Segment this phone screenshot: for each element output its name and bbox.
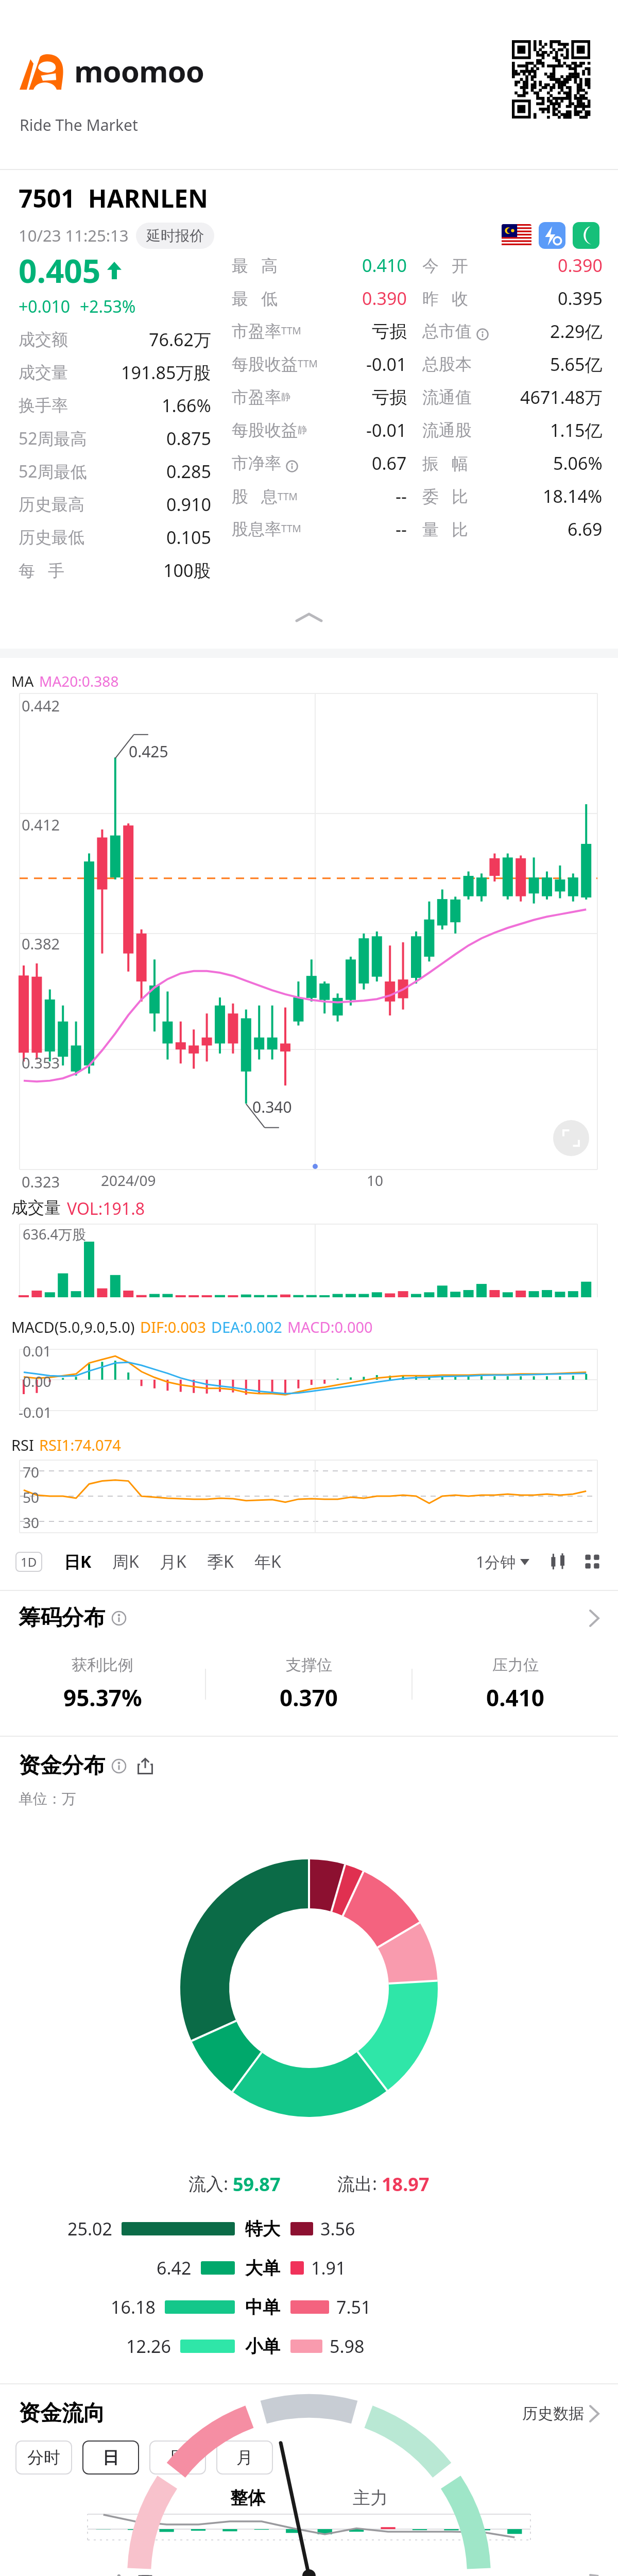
staticText: moomoo xyxy=(74,50,204,91)
staticText: RSI xyxy=(11,1435,34,1455)
staticText: 市净率 xyxy=(232,453,281,473)
staticText: 最 高 xyxy=(232,254,278,277)
staticText: 0.01 xyxy=(23,1341,51,1361)
staticText: 整体 xyxy=(230,2487,265,2509)
staticText: 0.410 xyxy=(486,1682,545,1713)
button[interactable]: Fullscreen xyxy=(553,1120,589,1156)
staticText: 18.14% xyxy=(543,484,603,508)
staticText: -- xyxy=(396,484,407,508)
button[interactable]: 日 xyxy=(82,2441,139,2475)
staticText: 0.875 xyxy=(166,427,211,450)
staticText: 52周最低 xyxy=(19,460,87,483)
button[interactable]: 延时报价 xyxy=(136,223,214,249)
staticText: MA xyxy=(11,671,34,691)
staticText: 支撑位 xyxy=(286,1655,332,1675)
button[interactable]: Collapse xyxy=(297,612,321,624)
staticText: 76.62万 xyxy=(149,328,211,351)
button[interactable]: More xyxy=(582,1551,603,1572)
staticText: 股 息 xyxy=(232,485,278,507)
staticText: 0.390 xyxy=(558,253,603,277)
staticText: 流通值 xyxy=(422,387,472,408)
staticText: 0.412 xyxy=(22,815,60,835)
staticText: 1D xyxy=(21,1553,37,1570)
button[interactable]: 主力 xyxy=(342,2487,398,2509)
staticText: 0.425 xyxy=(129,741,168,762)
staticText: 191.85万股 xyxy=(121,361,211,384)
staticText: 0.410 xyxy=(362,253,407,277)
staticText: 日K xyxy=(64,1550,92,1573)
button[interactable]: Lightning xyxy=(539,222,565,249)
staticText: 70 xyxy=(23,1462,40,1482)
staticText: 6.69 xyxy=(568,517,603,541)
button[interactable]: 筹码分布 xyxy=(0,1604,618,1632)
staticText: 0.390 xyxy=(362,286,407,310)
button[interactable]: Night mode xyxy=(573,222,599,249)
staticText: TTM xyxy=(298,357,318,370)
button[interactable]: 月 xyxy=(216,2441,273,2475)
staticText: 亏损 xyxy=(372,386,407,409)
staticText: 1.66% xyxy=(162,394,211,417)
staticText: 季K xyxy=(207,1550,234,1573)
staticText: 小单 xyxy=(245,2335,280,2358)
staticText: 周K xyxy=(112,1550,139,1573)
staticText: 月 xyxy=(236,2447,253,2468)
staticText: -- xyxy=(396,517,407,541)
staticText: 0.370 xyxy=(280,1682,338,1713)
staticText: RSI1:74.074 xyxy=(39,1435,121,1455)
staticText: 获利比例 xyxy=(72,1655,133,1675)
button[interactable]: 季K xyxy=(199,1546,242,1577)
staticText: 每股收益 xyxy=(232,354,298,375)
staticText: 成交额 xyxy=(19,329,68,350)
button[interactable]: 周 xyxy=(149,2441,206,2475)
staticText: -0.01 xyxy=(19,1402,52,1422)
staticText: 流通股 xyxy=(422,420,472,440)
staticText: 30 xyxy=(23,1513,40,1532)
button[interactable]: 月K xyxy=(151,1546,195,1577)
staticText: 0.323 xyxy=(22,1172,60,1192)
staticText: 分时 xyxy=(27,2447,60,2468)
staticText: 振 幅 xyxy=(422,452,468,474)
staticText: 筹码分布 xyxy=(19,1604,105,1632)
staticText: 0.910 xyxy=(166,493,211,516)
staticText: 2.29亿 xyxy=(550,319,603,343)
staticText: DIF:0.003 xyxy=(140,1317,206,1337)
button[interactable]: 年K xyxy=(246,1546,289,1577)
staticText: 1.15亿 xyxy=(550,418,603,442)
staticText: 5.06% xyxy=(553,451,603,475)
staticText: 中单 xyxy=(245,2296,280,2318)
staticText: 成交量 xyxy=(11,1197,61,1218)
staticText: 5.98 xyxy=(330,2334,365,2358)
staticText: 亏损 xyxy=(372,320,407,343)
staticText: 总股本 xyxy=(422,354,472,375)
staticText: DEA:0.002 xyxy=(211,1317,282,1337)
staticText: 4671.48万 xyxy=(520,385,603,409)
button[interactable]: 历史数据 xyxy=(522,2404,599,2424)
button[interactable]: 1分钟 xyxy=(473,1548,533,1575)
button[interactable]: 分时 xyxy=(15,2441,72,2475)
button[interactable]: 整体 xyxy=(220,2487,276,2509)
button[interactable]: 日K xyxy=(56,1546,100,1577)
staticText: 量 比 xyxy=(422,518,468,540)
button[interactable]: 1D xyxy=(15,1552,42,1572)
staticText: 股息率 xyxy=(232,519,281,539)
staticText: 25.02 xyxy=(67,2217,112,2241)
staticText: -0.01 xyxy=(366,352,407,376)
staticText: 0.442 xyxy=(22,696,60,716)
staticText: MACD(5.0,9.0,5.0) xyxy=(11,1317,135,1337)
staticText: 1分钟 xyxy=(476,1551,516,1572)
staticText: TTM xyxy=(281,522,301,535)
staticText: +2.53% xyxy=(80,295,136,318)
staticText: 单位：万 xyxy=(19,1790,76,1808)
staticText: 月K xyxy=(160,1550,186,1573)
button[interactable]: Share xyxy=(137,1758,153,1774)
staticText: 0.395 xyxy=(558,286,603,310)
button[interactable]: Candles xyxy=(548,1551,569,1572)
staticText: 压力位 xyxy=(492,1655,539,1675)
staticText: 静 xyxy=(298,424,307,436)
staticText: 换手率 xyxy=(19,395,68,416)
staticText: VOL:191.8 xyxy=(67,1197,145,1220)
staticText: 50 xyxy=(23,1487,40,1507)
other: Malaysia xyxy=(502,224,531,247)
staticText: 延时报价 xyxy=(146,227,204,245)
button[interactable]: 周K xyxy=(104,1546,147,1577)
